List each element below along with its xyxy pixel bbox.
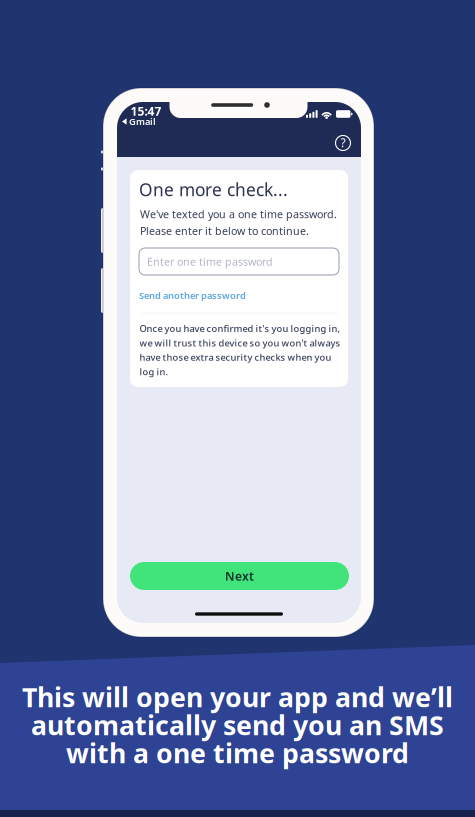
staticText: Please enter it below to continue. bbox=[140, 224, 309, 238]
button[interactable]: Send another password bbox=[138, 286, 247, 305]
staticText: This will open your app and we’ll bbox=[22, 679, 453, 715]
staticText: One more check... bbox=[139, 178, 288, 201]
staticText: with a one time password bbox=[66, 735, 409, 771]
staticText: ? bbox=[340, 135, 345, 151]
staticText: Gmail bbox=[129, 115, 156, 128]
staticText: we will trust this device so you won't a… bbox=[139, 337, 340, 349]
staticText: Once you have confirmed it's you logging… bbox=[139, 322, 340, 335]
staticText: automatically send you an SMS bbox=[31, 707, 444, 743]
staticText: We've texted you a one time password. bbox=[140, 207, 337, 221]
staticText: Enter one time password bbox=[147, 254, 273, 269]
button[interactable]: Help bbox=[332, 132, 354, 154]
staticText: Next bbox=[225, 568, 254, 584]
button[interactable]: Next bbox=[130, 562, 349, 590]
staticText: have those extra security checks when yo… bbox=[139, 351, 331, 363]
staticText: Send another password bbox=[139, 289, 246, 302]
staticText: log in. bbox=[139, 365, 168, 378]
staticText: 15:47 bbox=[130, 103, 161, 119]
